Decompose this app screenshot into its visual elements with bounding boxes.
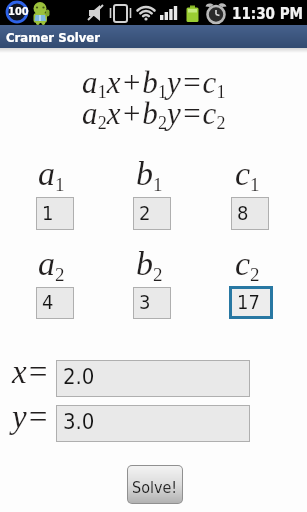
staticText: 2.0 — [63, 364, 95, 390]
button[interactable]: 1 — [37, 198, 73, 229]
staticText: Solve! — [132, 478, 178, 497]
button[interactable]: 8 — [232, 198, 268, 229]
staticText: b2 — [136, 245, 163, 285]
button[interactable]: 3 — [134, 288, 170, 318]
staticText: 2 — [139, 201, 151, 224]
staticText: a2x+b2y=c2 — [82, 96, 226, 133]
staticText: a1 — [38, 155, 65, 195]
staticText: 8 — [237, 201, 249, 224]
staticText: c1 — [235, 155, 260, 195]
staticText: Cramer Solver — [6, 30, 100, 45]
staticText: y= — [12, 399, 49, 436]
staticText: a2 — [38, 245, 65, 285]
button[interactable]: 2.0 — [57, 361, 249, 396]
staticText: b1 — [136, 155, 163, 195]
staticText: 1 — [42, 201, 54, 224]
button[interactable]: 17 — [232, 289, 270, 316]
staticText: c2 — [235, 245, 260, 285]
staticText: 17 — [237, 290, 260, 313]
button[interactable]: 3.0 — [57, 406, 249, 441]
staticText: 3 — [139, 290, 151, 313]
button[interactable]: 4 — [37, 288, 73, 318]
staticText: 11:30 PM — [232, 5, 303, 22]
button[interactable]: Solve! — [128, 466, 182, 503]
staticText: 100 — [8, 5, 29, 18]
staticText: x= — [12, 354, 49, 391]
staticText: 3.0 — [63, 409, 95, 435]
button[interactable]: 2 — [134, 198, 170, 229]
staticText: 4 — [42, 290, 54, 313]
staticText: a1x+b1y=c1 — [82, 65, 226, 102]
